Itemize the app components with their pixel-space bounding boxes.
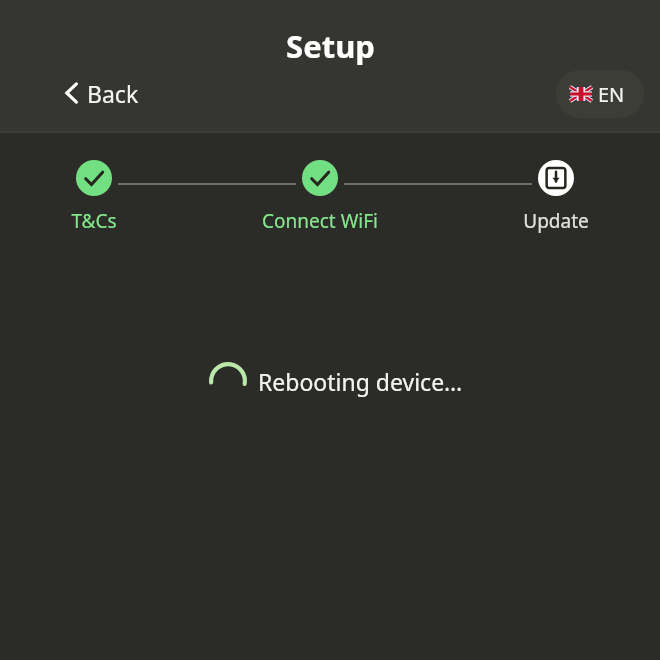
staticText: Update: [523, 208, 589, 234]
button[interactable]: T&Cs: [42, 160, 146, 242]
staticText: Back: [87, 78, 139, 109]
staticText: EN: [598, 81, 625, 108]
staticText: T&Cs: [71, 208, 117, 234]
staticText: Setup: [286, 25, 375, 67]
staticText: Rebooting device…: [258, 366, 463, 397]
staticText: Connect WiFi: [262, 208, 378, 234]
button[interactable]: Language EN: [556, 70, 644, 118]
button[interactable]: Update: [494, 160, 618, 242]
button[interactable]: Back: [56, 70, 162, 116]
button[interactable]: Connect WiFi: [230, 160, 410, 242]
